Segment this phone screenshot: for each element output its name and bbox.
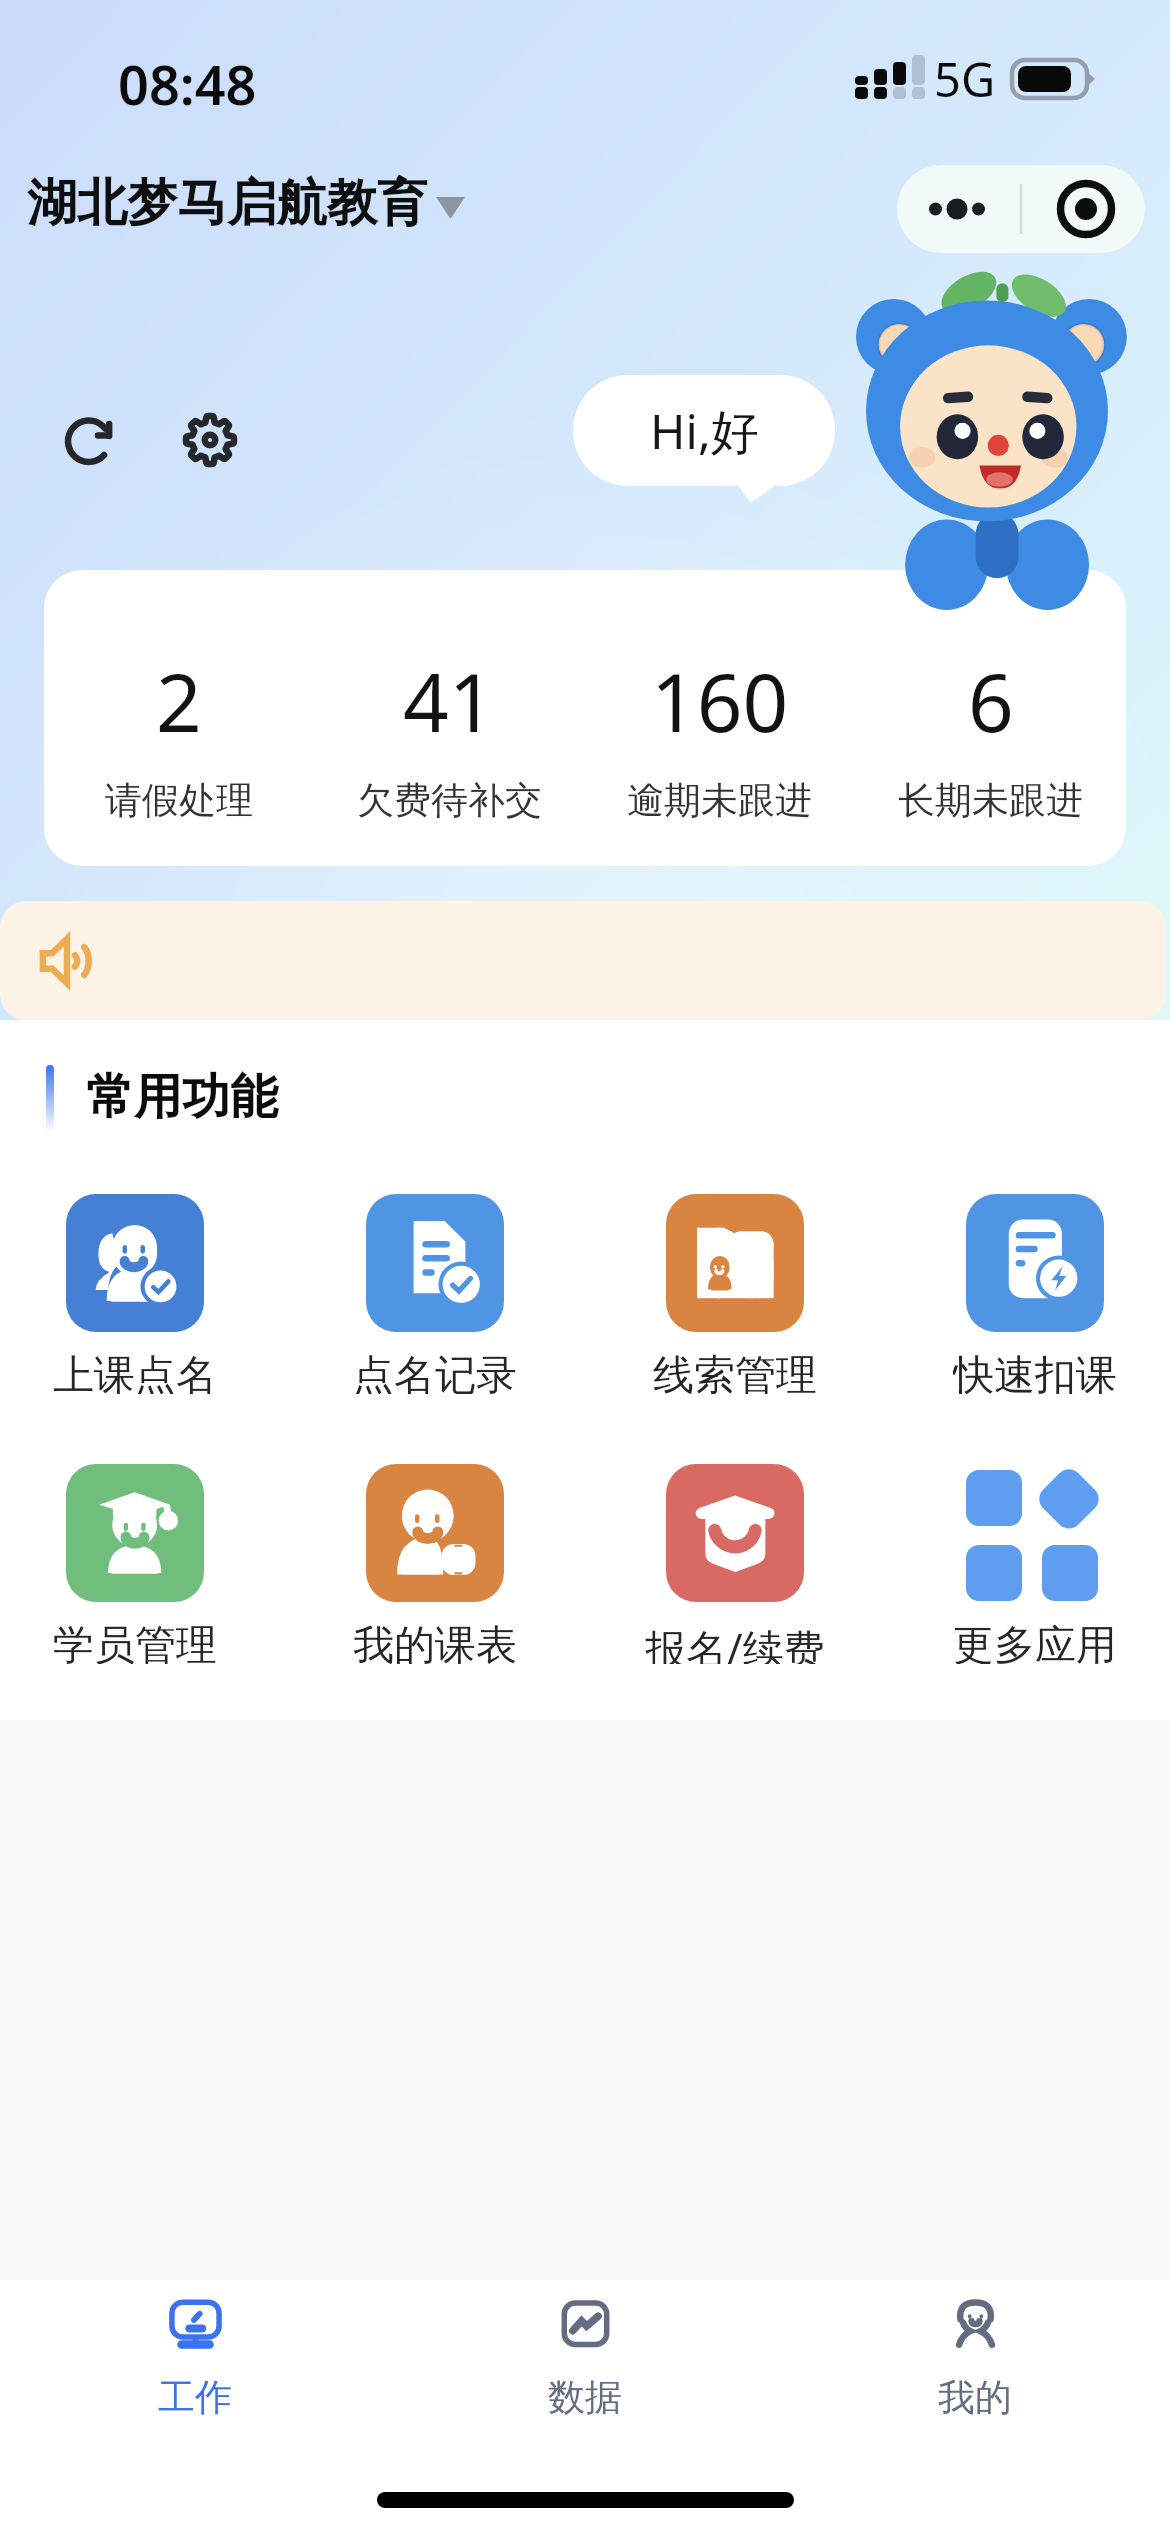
staticText: 快速扣课 bbox=[953, 1350, 1117, 1394]
button[interactable]: Refresh bbox=[62, 410, 122, 470]
staticText: 报名/续费 bbox=[645, 1620, 825, 1664]
staticText: 6 bbox=[968, 646, 1014, 755]
staticText: 点名记录 bbox=[353, 1350, 517, 1394]
staticText: 逾期未跟进 bbox=[627, 777, 812, 824]
button[interactable]: 数据 bbox=[390, 2280, 780, 2452]
staticText: 请假处理 bbox=[105, 777, 253, 824]
button[interactable]: 快速扣课 bbox=[890, 1194, 1170, 1394]
button[interactable]: 学员管理 bbox=[0, 1464, 280, 1664]
staticText: 08:48 bbox=[118, 47, 257, 121]
staticText: 我的 bbox=[938, 2374, 1012, 2421]
staticText: 常用功能 bbox=[86, 1067, 278, 1127]
staticText: 41 bbox=[403, 646, 495, 755]
button[interactable]: 160 bbox=[584, 570, 855, 866]
staticText: 我的课表 bbox=[353, 1620, 517, 1664]
button[interactable]: 报名/续费 bbox=[590, 1464, 880, 1664]
staticText: 长期未跟进 bbox=[898, 777, 1083, 824]
button[interactable]: 点名记录 bbox=[290, 1194, 580, 1394]
staticText: 更多应用 bbox=[953, 1620, 1117, 1664]
staticText: 上课点名 bbox=[53, 1350, 217, 1394]
staticText: 5G bbox=[934, 47, 996, 111]
staticText: 160 bbox=[651, 646, 789, 755]
button[interactable]: Settings bbox=[180, 410, 240, 470]
staticText: Hi,好 bbox=[650, 398, 759, 464]
button[interactable]: 湖北梦马启航教育 bbox=[21, 172, 471, 235]
staticText: 欠费待补交 bbox=[357, 777, 542, 824]
staticText: 2 bbox=[156, 646, 202, 755]
staticText: 工作 bbox=[158, 2374, 232, 2421]
button[interactable]: 更多应用 bbox=[890, 1464, 1170, 1664]
button[interactable]: 线索管理 bbox=[590, 1194, 880, 1394]
button[interactable]: 我的课表 bbox=[290, 1464, 580, 1664]
button[interactable] bbox=[0, 901, 1166, 1020]
staticText: 线索管理 bbox=[653, 1350, 817, 1394]
button[interactable]: 我的 bbox=[780, 2280, 1170, 2452]
staticText: 数据 bbox=[548, 2374, 622, 2421]
staticText: 学员管理 bbox=[53, 1620, 217, 1664]
staticText: 湖北梦马启航教育 bbox=[27, 172, 427, 235]
button[interactable]: 上课点名 bbox=[0, 1194, 280, 1394]
button[interactable]: More options bbox=[897, 165, 1145, 253]
button[interactable]: 工作 bbox=[0, 2280, 390, 2452]
button[interactable]: 41 bbox=[314, 570, 584, 866]
button[interactable]: 2 bbox=[44, 570, 314, 866]
button[interactable]: 6 bbox=[855, 570, 1126, 866]
